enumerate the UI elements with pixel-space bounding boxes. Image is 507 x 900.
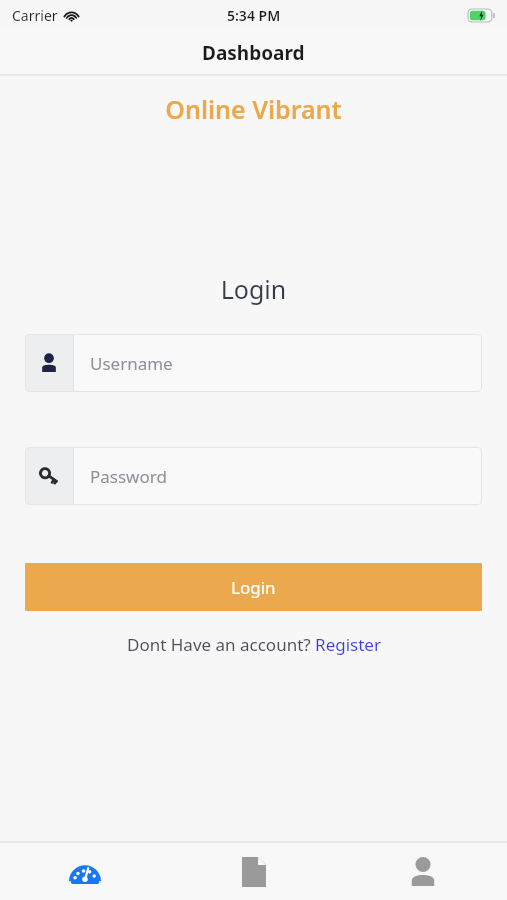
button[interactable]: Password bbox=[25, 447, 482, 505]
staticText: Dont Have an account? Register bbox=[127, 633, 381, 656]
staticText: Login bbox=[231, 576, 276, 599]
button[interactable]: Dont Have an account? Register bbox=[127, 633, 381, 656]
staticText: 5:34 PM bbox=[227, 6, 281, 25]
staticText: Password bbox=[90, 465, 167, 488]
staticText: Username bbox=[90, 352, 173, 375]
button[interactable]: Dashboard bbox=[0, 843, 169, 900]
other: Username bbox=[25, 334, 73, 392]
staticText: Carrier bbox=[12, 6, 58, 25]
staticText: Online Vibrant bbox=[0, 92, 507, 126]
other: Password bbox=[25, 447, 73, 505]
button[interactable]: Profile bbox=[338, 843, 507, 900]
staticText: Login bbox=[0, 272, 507, 306]
button[interactable]: Username bbox=[25, 334, 482, 392]
button[interactable]: Documents bbox=[169, 843, 338, 900]
button[interactable]: Login bbox=[25, 563, 482, 611]
staticText: Dashboard bbox=[202, 40, 305, 66]
